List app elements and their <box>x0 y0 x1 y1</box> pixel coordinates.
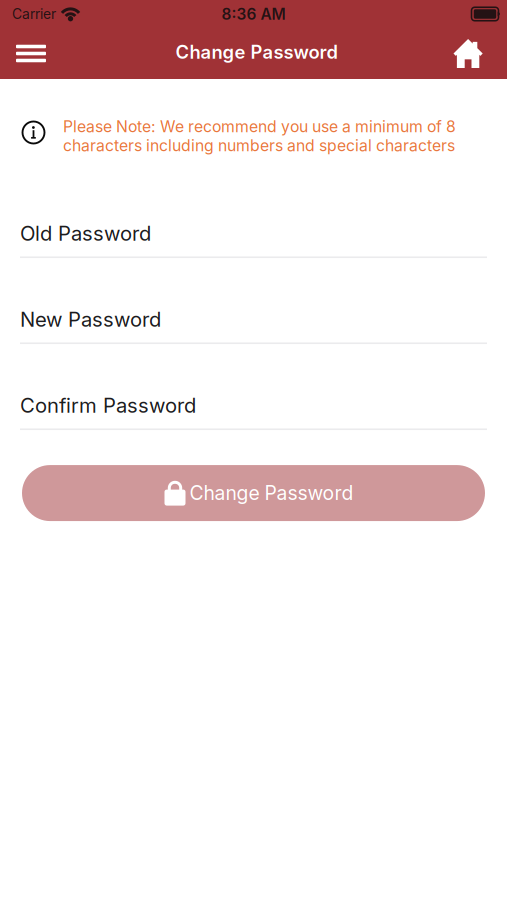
staticText: Carrier <box>12 6 56 22</box>
button[interactable]: Change Password <box>22 465 485 521</box>
staticText: Old Password <box>20 221 151 246</box>
staticText: Confirm Password <box>20 393 196 418</box>
button[interactable]: Confirm Password <box>20 397 487 430</box>
button[interactable]: Home <box>430 28 507 79</box>
staticText: New Password <box>20 307 161 332</box>
button[interactable]: New Password <box>20 311 487 344</box>
staticText: Change Password <box>175 41 337 63</box>
staticText: 8:36 AM <box>221 5 285 23</box>
button[interactable]: Old Password <box>20 225 487 258</box>
staticText: Change Password <box>189 481 353 505</box>
staticText: Please Note: We recommend you use a mini… <box>63 117 456 155</box>
button[interactable]: Menu <box>0 28 62 79</box>
